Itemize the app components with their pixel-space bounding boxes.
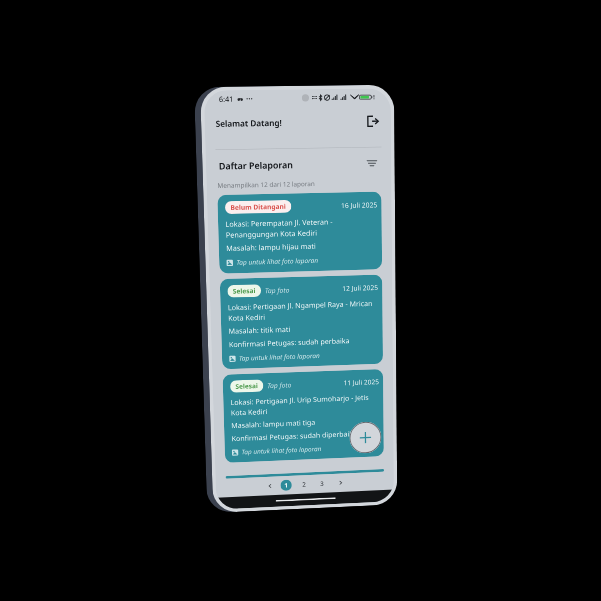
staticText: Tap untuk lihat foto laporan: [241, 444, 321, 456]
staticText: Selesai: [235, 381, 258, 391]
staticText: Menampilkan 12 dari 12 laporan: [217, 179, 315, 190]
staticText: Lokasi: Perempatan Jl. Veteran - Penangg…: [225, 216, 378, 240]
button[interactable]: 2: [298, 479, 310, 490]
staticText: Masalah: titik mati: [228, 324, 291, 336]
staticText: Masalah: lampu mati tiga: [231, 417, 315, 430]
staticText: 1: [284, 481, 288, 489]
button[interactable]: Belum Ditangani: [217, 192, 382, 274]
button[interactable]: Selesai: [222, 369, 384, 463]
button[interactable]: 1: [280, 479, 292, 491]
staticText: 6:41: [219, 94, 234, 104]
button[interactable]: Next page: [335, 477, 346, 489]
staticText: Selesai: [233, 286, 256, 296]
button[interactable]: Previous page: [264, 480, 276, 492]
staticText: Masalah: lampu hijau mati: [226, 241, 316, 253]
staticText: Tap foto: [265, 285, 290, 295]
button[interactable]: Filter: [365, 156, 379, 170]
staticText: Lokasi: Pertigaan Jl. Ngampel Raya - Mri…: [228, 298, 379, 323]
button[interactable]: Add report: [349, 421, 382, 454]
staticText: Tap foto: [267, 380, 292, 390]
button[interactable]: Selesai: [220, 274, 383, 369]
staticText: Konfirmasi Petugas: sudah perbaika: [229, 336, 350, 349]
button[interactable]: 3: [316, 478, 328, 489]
staticText: Lokasi: Pertigaan Jl. Urip Sumoharjo - J…: [230, 392, 380, 418]
staticText: Belum Ditangani: [230, 202, 286, 212]
staticText: 3: [320, 479, 324, 488]
staticText: Selamat Datang!: [215, 117, 282, 129]
button[interactable]: Logout: [365, 113, 380, 129]
staticText: 11 Juli 2025: [343, 377, 379, 387]
staticText: 16 Juli 2025: [341, 200, 378, 210]
staticText: Tap untuk lihat foto laporan: [236, 256, 318, 267]
staticText: Tap untuk lihat foto laporan: [239, 351, 320, 363]
staticText: 2: [302, 480, 306, 489]
staticText: 12 Juli 2025: [342, 283, 378, 293]
staticText: Konfirmasi Petugas: sudah diperbaiki: [231, 429, 355, 443]
staticText: Daftar Pelaporan: [219, 159, 293, 172]
